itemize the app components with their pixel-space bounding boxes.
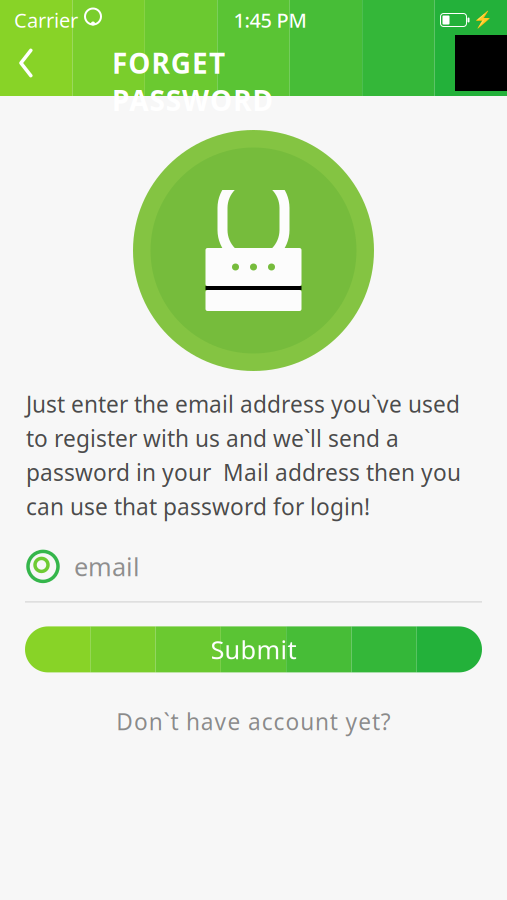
button[interactable]: Don`t have account yet?	[96, 696, 411, 746]
staticText: Submit	[210, 633, 296, 666]
staticText: email	[74, 550, 140, 583]
staticText: Don`t have account yet?	[116, 706, 391, 736]
button[interactable]: Back	[0, 35, 52, 91]
staticText: Carrier	[14, 7, 78, 33]
staticText: FORGET PASSWORD	[112, 44, 395, 82]
staticText: ⚡	[473, 11, 493, 29]
staticText: 1:45 PM	[233, 7, 306, 33]
staticText: Just enter the email address you`ve used…	[26, 389, 461, 521]
button[interactable]: Submit	[0, 626, 507, 672]
